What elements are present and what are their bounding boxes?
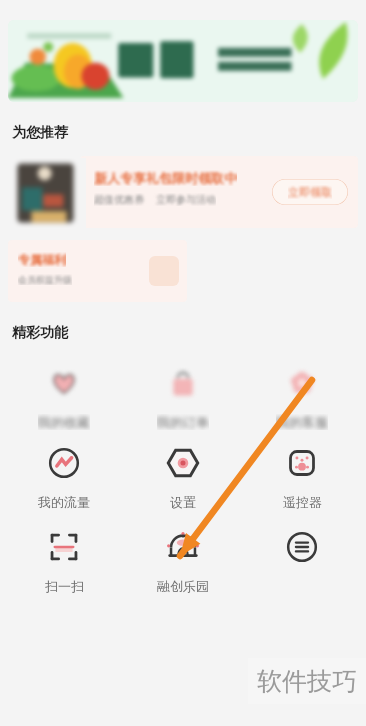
staticText: 我的流量 — [38, 494, 90, 510]
staticText: 为您推荐 — [12, 124, 68, 142]
button[interactable]: 立即领取 — [272, 179, 348, 205]
staticText: 扫一扫 — [45, 578, 84, 594]
button[interactable]: 我的客服 — [247, 360, 357, 430]
button[interactable]: 新人专享礼包限时领取中 — [8, 156, 358, 228]
button[interactable]: 专属福利 — [8, 240, 187, 302]
staticText: 专属福利 — [18, 252, 66, 267]
button[interactable]: 我的收藏 — [9, 360, 119, 430]
staticText: 融创乐园 — [157, 578, 209, 594]
button[interactable]: 我的流量 — [9, 440, 119, 510]
staticText: 遥控器 — [283, 494, 322, 510]
button[interactable]: More options — [247, 524, 357, 594]
button[interactable]: 我的订单 — [128, 360, 238, 430]
staticText: 软件技巧 — [257, 666, 357, 697]
button[interactable]: 遥控器 — [247, 440, 357, 510]
staticText: 我的收藏 — [38, 414, 90, 430]
button[interactable]: Promotion banner — [8, 20, 358, 102]
staticText: 我的客服 — [276, 414, 328, 430]
staticText: 立即参与活动 — [156, 193, 216, 206]
button[interactable]: 融创乐园 — [128, 524, 238, 594]
staticText: 精彩功能 — [12, 324, 68, 342]
staticText: 设置 — [170, 494, 196, 510]
staticText: 立即领取 — [288, 185, 332, 199]
button[interactable]: 设置 — [128, 440, 238, 510]
staticText: 超值优惠券 — [94, 193, 144, 206]
staticText: 会员权益升级 — [18, 274, 72, 285]
staticText: 我的订单 — [157, 414, 209, 430]
button[interactable]: 扫一扫 — [9, 524, 119, 594]
staticText: 新人专享礼包限时领取中 — [94, 170, 237, 186]
